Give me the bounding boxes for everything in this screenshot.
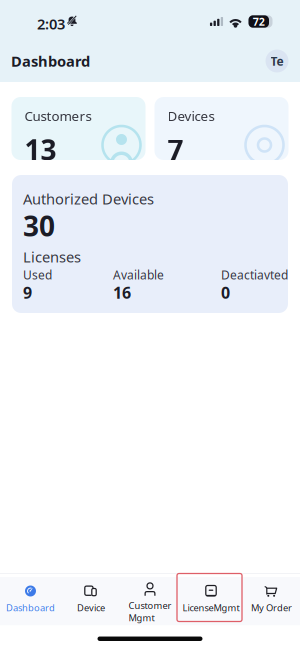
staticText: 16 — [113, 282, 131, 303]
button[interactable]: My Order — [243, 573, 300, 621]
staticText: 7 — [167, 131, 183, 168]
staticText: Available — [113, 267, 164, 283]
staticText: 13 — [24, 131, 56, 168]
staticText: Authorized Devices — [23, 189, 154, 208]
staticText: Used — [23, 267, 52, 283]
staticText: Devices — [167, 107, 214, 125]
staticText: 72 — [253, 14, 265, 29]
staticText: Dashboard — [6, 601, 55, 614]
staticText: Device — [77, 601, 105, 614]
button[interactable]: Devices — [154, 97, 288, 160]
staticText: 0 — [221, 282, 230, 303]
staticText: 9 — [23, 282, 32, 303]
staticText: Deactiavted — [221, 267, 288, 283]
staticText: Licenses — [23, 247, 81, 266]
staticText: Customer Mgmt — [128, 599, 171, 624]
button[interactable]: Customers — [11, 97, 145, 160]
button[interactable]: Device — [61, 573, 121, 621]
staticText: 2:03 — [37, 14, 65, 33]
button[interactable]: Authorized Devices — [12, 175, 288, 313]
staticText: Te — [270, 53, 283, 69]
staticText: My Order — [251, 601, 292, 614]
staticText: Dashboard — [11, 51, 90, 71]
button[interactable]: Profile — [262, 46, 292, 76]
button[interactable]: Customer Mgmt — [121, 573, 179, 621]
staticText: Customers — [24, 107, 91, 125]
staticText: 30 — [23, 207, 55, 244]
staticText: LicenseMgmt — [182, 601, 239, 614]
button[interactable]: LicenseMgmt — [179, 573, 243, 621]
button[interactable]: Dashboard — [0, 573, 61, 621]
